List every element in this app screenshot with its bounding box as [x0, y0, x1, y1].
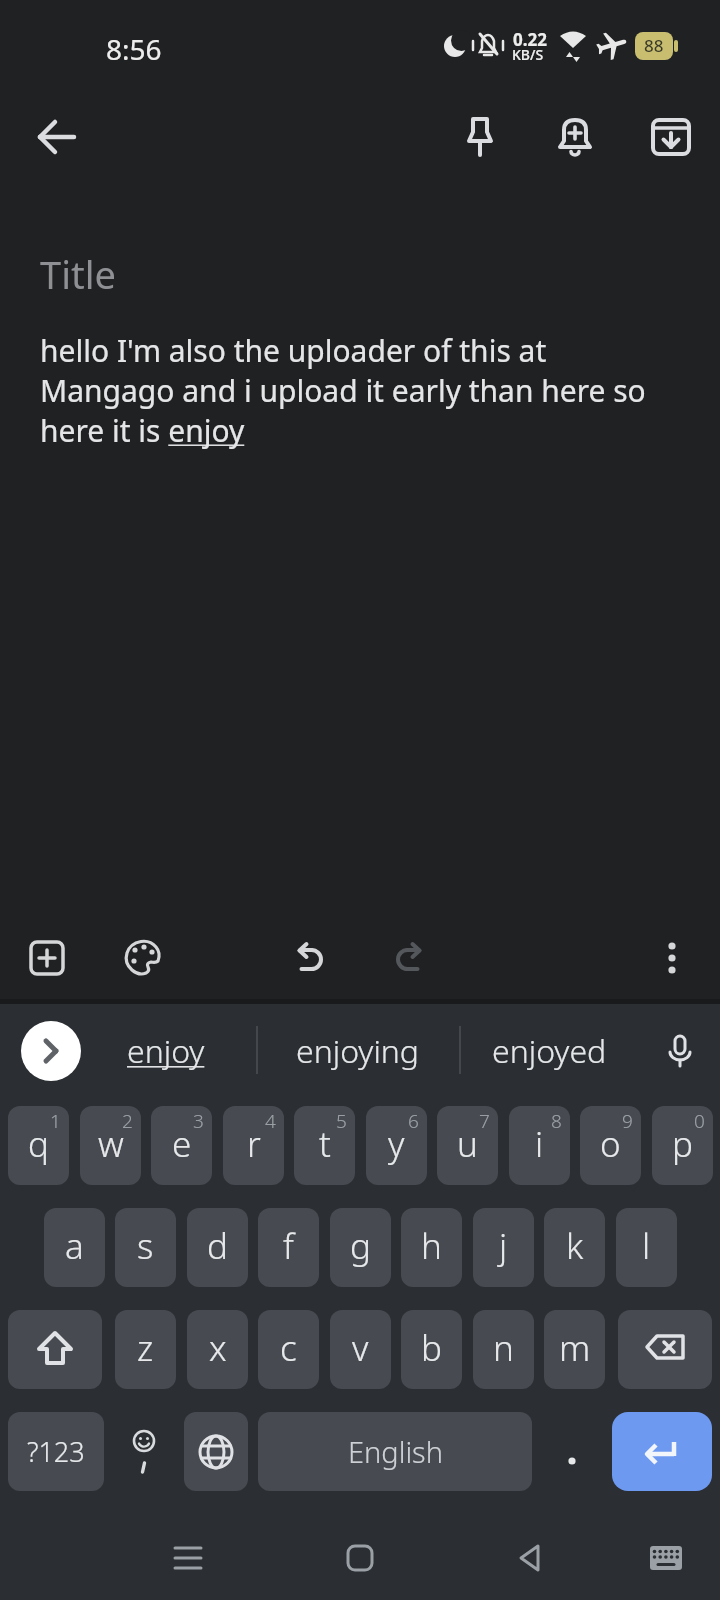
button[interactable]: j [473, 1208, 534, 1287]
staticText: v [352, 1324, 369, 1372]
staticText: t [319, 1120, 331, 1168]
staticText: 0 [694, 1108, 705, 1134]
staticText: k [566, 1222, 584, 1270]
button[interactable]: l [616, 1208, 677, 1287]
staticText: 5 [336, 1108, 347, 1134]
button[interactable]: x [187, 1310, 248, 1389]
staticText: f [283, 1222, 294, 1270]
button[interactable] [540, 1412, 604, 1491]
button[interactable]: o [580, 1106, 641, 1185]
staticText: r [247, 1120, 261, 1168]
button[interactable] [636, 1528, 696, 1588]
button[interactable] [641, 107, 701, 167]
button[interactable]: ?123 [8, 1412, 104, 1491]
staticText: c [280, 1324, 297, 1372]
button[interactable]: q [8, 1106, 69, 1185]
staticText: ?123 [27, 1433, 85, 1470]
staticText: m [559, 1324, 591, 1372]
button[interactable]: n [473, 1310, 534, 1389]
button[interactable]: b [401, 1310, 462, 1389]
staticText: 1 [50, 1108, 61, 1134]
staticText: English [348, 1432, 443, 1471]
button[interactable] [618, 1310, 712, 1389]
button[interactable]: enjoy [100, 1024, 232, 1078]
button[interactable] [450, 107, 510, 167]
staticText: n [493, 1324, 514, 1372]
button[interactable]: e [151, 1106, 212, 1185]
staticText: h [421, 1222, 442, 1270]
button[interactable] [112, 1412, 176, 1491]
staticText: a [65, 1222, 84, 1270]
button[interactable]: k [544, 1208, 605, 1287]
staticText: 2 [122, 1108, 133, 1134]
staticText: z [137, 1324, 154, 1372]
staticText: Title [40, 248, 116, 300]
staticText: 6 [408, 1108, 419, 1134]
staticText: q [28, 1120, 49, 1168]
button[interactable]: p [652, 1106, 713, 1185]
button[interactable]: u [437, 1106, 498, 1185]
button[interactable]: w [80, 1106, 141, 1185]
button[interactable] [158, 1528, 218, 1588]
staticText: 4 [265, 1108, 276, 1134]
button[interactable] [545, 107, 605, 167]
button[interactable]: s [115, 1208, 176, 1287]
button[interactable] [612, 1412, 712, 1491]
button[interactable]: m [544, 1310, 605, 1389]
button[interactable] [113, 928, 173, 988]
button[interactable]: i [509, 1106, 570, 1185]
button[interactable]: t [294, 1106, 355, 1185]
staticText: o [600, 1120, 621, 1168]
staticText: p [672, 1120, 693, 1168]
staticText: u [457, 1120, 478, 1168]
button[interactable] [642, 928, 702, 988]
staticText: KB/S [512, 45, 544, 64]
button[interactable] [650, 1022, 710, 1082]
button[interactable]: enjoyed [468, 1024, 630, 1078]
staticText: b [421, 1324, 442, 1372]
staticText: l [642, 1222, 651, 1270]
button[interactable]: g [330, 1208, 391, 1287]
staticText: x [209, 1324, 227, 1372]
staticText: 8:56 [106, 30, 162, 68]
button[interactable] [500, 1528, 560, 1588]
button[interactable] [8, 1310, 102, 1389]
button[interactable]: r [223, 1106, 284, 1185]
staticText: enjoyed [492, 1029, 607, 1073]
button[interactable] [330, 1528, 390, 1588]
staticText: enjoying [296, 1029, 420, 1073]
staticText: 8 [551, 1108, 562, 1134]
button[interactable]: z [115, 1310, 176, 1389]
button[interactable]: v [330, 1310, 391, 1389]
button[interactable] [282, 928, 342, 988]
staticText: 9 [622, 1108, 633, 1134]
staticText: 88 [644, 34, 664, 57]
staticText: hello I'm also the uploader of this at M… [40, 330, 646, 451]
button[interactable] [377, 928, 437, 988]
staticText: s [137, 1222, 154, 1270]
button[interactable] [21, 1021, 81, 1081]
button[interactable]: English [258, 1412, 532, 1491]
staticText: d [207, 1222, 228, 1270]
button[interactable]: y [366, 1106, 427, 1185]
button[interactable]: c [258, 1310, 319, 1389]
staticText: enjoy [127, 1029, 205, 1073]
button[interactable] [17, 928, 77, 988]
staticText: g [350, 1222, 371, 1270]
button[interactable]: d [187, 1208, 248, 1287]
staticText: w [98, 1120, 124, 1168]
staticText: 7 [479, 1108, 490, 1134]
button[interactable] [184, 1412, 248, 1491]
staticText: j [499, 1222, 508, 1270]
staticText: i [535, 1120, 544, 1168]
button[interactable] [27, 107, 87, 167]
staticText: 0.22 [513, 28, 547, 51]
button[interactable]: a [44, 1208, 105, 1287]
staticText: y [388, 1120, 405, 1168]
button[interactable]: f [258, 1208, 319, 1287]
button[interactable]: h [401, 1208, 462, 1287]
staticText: e [172, 1120, 192, 1168]
staticText: 3 [193, 1108, 204, 1134]
button[interactable]: enjoying [277, 1024, 439, 1078]
